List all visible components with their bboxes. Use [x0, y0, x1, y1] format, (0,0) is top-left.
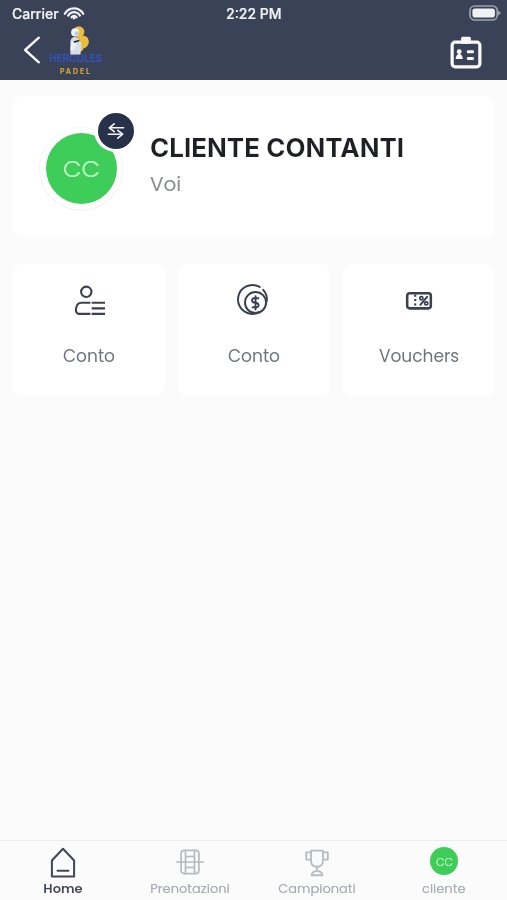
button[interactable]: Tessera — [446, 33, 486, 73]
staticText: Carrier — [12, 5, 59, 22]
button[interactable]: Indietro — [7, 31, 51, 75]
staticText: Voi — [150, 170, 182, 198]
button[interactable]: CC — [380, 841, 507, 900]
staticText: Vouchers — [379, 344, 460, 368]
button[interactable]: Conto — [12, 264, 165, 396]
button[interactable]: Campionati — [253, 841, 380, 900]
button[interactable]: Vouchers — [343, 264, 495, 396]
button[interactable]: Cambia utente — [98, 113, 134, 149]
staticText: CC — [436, 854, 453, 869]
button[interactable]: CC — [12, 96, 495, 237]
button[interactable]: Conto — [178, 264, 330, 396]
staticText: PADEL — [60, 67, 92, 75]
staticText: CC — [63, 152, 101, 186]
staticText: Campionati — [278, 879, 356, 897]
staticText: Prenotazioni — [150, 879, 230, 897]
staticText: cliente — [422, 879, 466, 897]
staticText: HERCULES — [49, 52, 103, 64]
staticText: Home — [43, 879, 83, 897]
staticText: 2:22 PM — [226, 5, 282, 22]
staticText: Conto — [228, 344, 280, 368]
button[interactable]: Home — [0, 841, 126, 900]
staticText: CLIENTE CONTANTI — [150, 132, 405, 163]
staticText: Conto — [63, 344, 115, 368]
button[interactable]: Prenotazioni — [126, 841, 253, 900]
